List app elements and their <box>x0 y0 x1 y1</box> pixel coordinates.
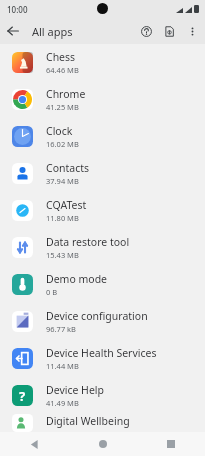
staticText: 11.80 MB <box>46 213 79 223</box>
button[interactable]: Contacts <box>0 155 205 192</box>
staticText: All apps <box>32 24 73 39</box>
staticText: 11.44 MB <box>46 361 79 371</box>
button[interactable]: Data restore tool <box>0 229 205 266</box>
staticText: Device Health Services <box>46 346 157 360</box>
staticText: Clock <box>46 124 73 138</box>
button[interactable]: Digital Wellbeing <box>0 414 205 432</box>
staticText: 41.25 MB <box>46 102 79 112</box>
staticText: Chess <box>46 50 76 64</box>
button[interactable]: Demo mode <box>0 266 205 303</box>
button[interactable]: Help <box>135 20 158 43</box>
staticText: ? <box>19 387 26 405</box>
staticText: CQATest <box>46 198 87 212</box>
button[interactable]: Back <box>0 432 69 456</box>
button[interactable]: CQATest <box>0 192 205 229</box>
staticText: 41.49 MB <box>46 398 79 408</box>
button[interactable]: Chess <box>0 44 205 81</box>
button[interactable]: Home <box>69 432 137 456</box>
staticText: Contacts <box>46 161 90 175</box>
button[interactable]: Device Health Services <box>0 340 205 377</box>
staticText: Chrome <box>46 87 86 101</box>
button[interactable]: Recent apps <box>137 432 205 456</box>
staticText: 16.02 MB <box>46 139 79 149</box>
button[interactable]: Back <box>0 18 26 44</box>
staticText: 15.43 MB <box>46 250 79 260</box>
staticText: Device Help <box>46 383 104 397</box>
staticText: Device configuration <box>46 309 148 323</box>
button[interactable]: More options <box>181 20 203 42</box>
staticText: 37.94 MB <box>46 176 79 186</box>
staticText: 96.77 kB <box>46 324 76 334</box>
button[interactable]: Clock <box>0 118 205 155</box>
button[interactable]: Send feedback <box>158 20 181 43</box>
staticText: 64.46 MB <box>46 65 79 75</box>
staticText: Data restore tool <box>46 235 130 249</box>
button[interactable]: ? <box>0 377 205 414</box>
staticText: Digital Wellbeing <box>46 414 130 428</box>
staticText: 10:00 <box>7 4 28 15</box>
staticText: Demo mode <box>46 272 108 286</box>
staticText: 0 B <box>46 287 58 297</box>
button[interactable]: Device configuration <box>0 303 205 340</box>
button[interactable]: Chrome <box>0 81 205 118</box>
